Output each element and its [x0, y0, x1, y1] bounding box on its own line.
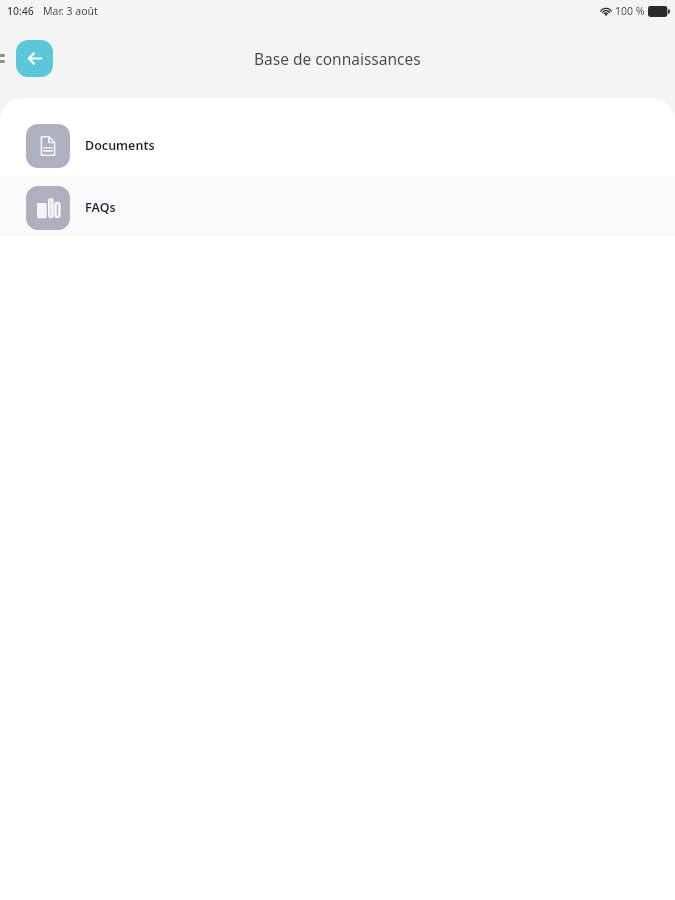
staticText: 100 % [615, 4, 645, 18]
staticText: FAQs [85, 199, 116, 216]
staticText: Documents [85, 137, 155, 154]
staticText: Base de connaissances [254, 48, 421, 69]
button[interactable]: Documents [0, 116, 675, 176]
staticText: Mar. 3 août [43, 4, 98, 18]
button[interactable]: Back [16, 40, 53, 77]
staticText: 10:46 [7, 4, 34, 18]
button[interactable]: FAQs [0, 176, 675, 236]
